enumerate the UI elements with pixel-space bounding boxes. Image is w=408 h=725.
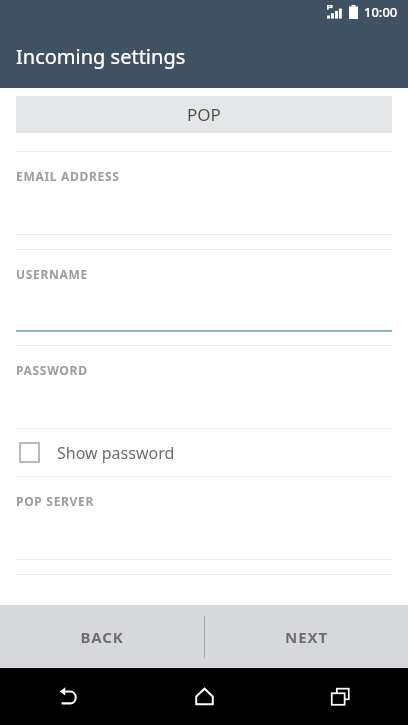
staticText: PASSWORD	[16, 362, 88, 378]
button[interactable]: Show password	[0, 429, 408, 476]
button[interactable]: Home	[136, 668, 272, 725]
staticText: POP	[187, 103, 221, 126]
staticText: Show password	[57, 442, 175, 464]
staticText: POP SERVER	[16, 493, 95, 509]
staticText: NEXT	[285, 627, 328, 647]
staticText: USERNAME	[16, 266, 88, 282]
button[interactable]: NEXT	[204, 605, 408, 668]
button[interactable]: Recent apps	[272, 668, 408, 725]
staticText: 10:00	[364, 3, 398, 21]
button[interactable]: Back	[0, 668, 136, 725]
button[interactable]: BACK	[0, 605, 204, 668]
staticText: Incoming settings	[16, 43, 186, 70]
staticText: EMAIL ADDRESS	[16, 168, 120, 184]
staticText: BACK	[80, 627, 124, 647]
button[interactable]: POP	[16, 96, 392, 133]
